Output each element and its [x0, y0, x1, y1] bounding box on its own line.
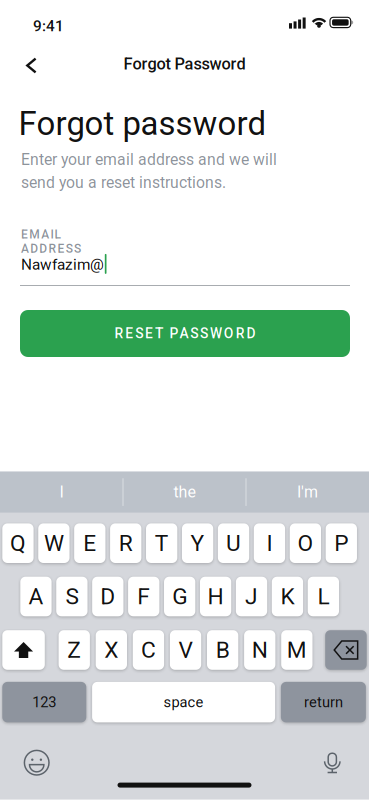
button[interactable]: M	[281, 630, 312, 670]
staticText: L	[317, 583, 329, 610]
staticText: I'm	[297, 483, 318, 501]
button[interactable]: R	[110, 523, 141, 563]
button[interactable]: I'm	[246, 472, 369, 513]
staticText: Q	[10, 530, 26, 556]
button[interactable]: N	[244, 630, 275, 670]
button[interactable]: O	[290, 523, 321, 563]
button[interactable]: J	[236, 577, 267, 616]
staticText: I	[266, 530, 272, 556]
staticText: D	[100, 583, 115, 610]
staticText: I	[59, 483, 63, 501]
staticText: M	[287, 637, 307, 663]
button[interactable]: Delete	[325, 630, 367, 670]
staticText: return	[304, 694, 343, 711]
staticText: Forgot password	[18, 104, 266, 143]
staticText: C	[141, 637, 156, 663]
button[interactable]: C	[133, 630, 164, 670]
staticText: R	[119, 530, 133, 556]
button[interactable]: Shift	[2, 630, 45, 670]
staticText: Forgot Password	[123, 54, 245, 74]
button[interactable]: D	[92, 577, 123, 616]
button[interactable]: F	[128, 577, 159, 616]
button[interactable]: I	[0, 472, 123, 513]
staticText: S	[65, 583, 78, 610]
button[interactable]: Emoji	[24, 750, 49, 775]
staticText: G	[172, 583, 187, 610]
button[interactable]: Z	[59, 630, 90, 670]
button[interactable]: W	[38, 523, 69, 563]
button[interactable]: H	[200, 577, 231, 616]
staticText: 9:41	[33, 17, 64, 35]
staticText: send you a reset instructions.	[21, 173, 226, 192]
staticText: the	[173, 483, 195, 501]
button[interactable]: K	[272, 577, 303, 616]
button[interactable]: U	[218, 523, 249, 563]
button[interactable]: Y	[182, 523, 213, 563]
button[interactable]: Dictation	[324, 752, 341, 773]
button[interactable]: E	[74, 523, 105, 563]
button[interactable]: 123	[2, 682, 86, 722]
staticText: U	[226, 530, 241, 556]
staticText: W	[44, 530, 64, 556]
staticText: V	[179, 637, 193, 663]
staticText: B	[216, 637, 230, 663]
button[interactable]: Q	[2, 523, 34, 563]
button[interactable]: S	[56, 577, 87, 616]
button[interactable]: B	[207, 630, 238, 670]
staticText: J	[245, 583, 258, 610]
staticText: X	[104, 637, 118, 663]
staticText: H	[208, 583, 224, 610]
button[interactable]: G	[164, 577, 195, 616]
staticText: O	[297, 530, 313, 556]
staticText: Nawfazim@	[21, 255, 104, 273]
button[interactable]: X	[96, 630, 127, 670]
staticText: A	[28, 583, 43, 610]
button[interactable]: space	[92, 682, 275, 722]
button[interactable]: A	[20, 577, 52, 616]
staticText: Enter your email address and we will	[21, 150, 277, 169]
button[interactable]: RESET PASSWORD	[20, 310, 350, 357]
button[interactable]: the	[123, 472, 246, 513]
button[interactable]: V	[170, 630, 201, 670]
button[interactable]: P	[326, 523, 357, 563]
staticText: Z	[67, 637, 81, 663]
staticText: Y	[191, 530, 205, 556]
staticText: space	[164, 694, 204, 711]
staticText: E	[83, 530, 96, 556]
button[interactable]: T	[146, 523, 177, 563]
staticText: K	[280, 583, 294, 610]
staticText: RESET PASSWORD	[114, 325, 255, 342]
button[interactable]: L	[308, 577, 339, 616]
staticText: T	[155, 530, 169, 556]
staticText: EMAIL ADDRESS	[21, 227, 126, 242]
staticText: 123	[32, 694, 56, 711]
staticText: N	[252, 637, 268, 663]
staticText: F	[137, 583, 150, 610]
button[interactable]: return	[281, 682, 366, 722]
staticText: P	[334, 530, 348, 556]
button[interactable]: I	[254, 523, 285, 563]
button[interactable]: Back	[11, 45, 51, 85]
